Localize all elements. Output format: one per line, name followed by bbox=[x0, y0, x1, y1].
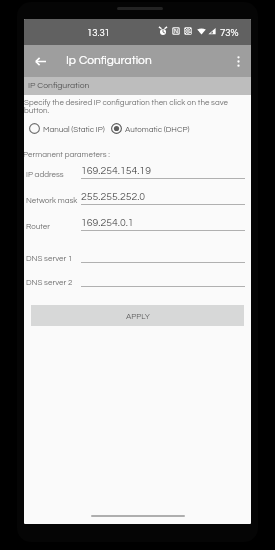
button[interactable]: DNS server 1 bbox=[24, 249, 251, 267]
staticText: APPLY bbox=[126, 312, 150, 320]
staticText: DNS server 1 bbox=[26, 254, 73, 262]
button[interactable]: Navigate up bbox=[30, 51, 50, 71]
staticText: Network mask bbox=[26, 196, 78, 204]
staticText: Manual (Static IP) bbox=[43, 125, 105, 133]
button[interactable]: DNS server 2 bbox=[24, 273, 251, 291]
staticText: 169.254.154.19 bbox=[81, 165, 151, 176]
staticText: DNS server 2 bbox=[26, 278, 73, 286]
staticText: IP Configuration bbox=[28, 81, 90, 90]
button[interactable]: APPLY bbox=[31, 305, 244, 326]
staticText: 73% bbox=[220, 28, 239, 38]
button[interactable]: Network mask bbox=[24, 191, 251, 209]
staticText: Permanent parameters : bbox=[24, 150, 110, 158]
staticText: Specify the desired IP configuration the… bbox=[24, 98, 232, 115]
button[interactable]: Automatic (DHCP) bbox=[106, 121, 190, 136]
staticText: IP address bbox=[26, 170, 64, 178]
staticText: Automatic (DHCP) bbox=[125, 125, 190, 133]
button[interactable]: More options bbox=[229, 52, 247, 70]
staticText: 169.254.0.1 bbox=[81, 217, 134, 228]
staticText: 13.31 bbox=[87, 28, 110, 38]
staticText: Ip Configuration bbox=[66, 54, 152, 66]
staticText: 255.255.252.0 bbox=[81, 191, 146, 202]
button[interactable]: Manual (Static IP) bbox=[24, 121, 105, 136]
staticText: Router bbox=[26, 222, 51, 230]
button[interactable]: Router bbox=[24, 217, 251, 235]
button[interactable]: IP address bbox=[24, 165, 251, 183]
